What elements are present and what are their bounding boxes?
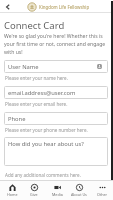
staticText: How did you hear about us?: [8, 140, 84, 148]
staticText: Phone: [8, 115, 26, 123]
staticText: We're so glad you're here! Whether this …: [4, 33, 107, 56]
button[interactable]: email.address@user.com: [4, 86, 108, 99]
button[interactable]: About Us: [68, 181, 90, 200]
staticText: Connect Card: [4, 19, 65, 32]
button[interactable]: How did you hear about us?: [4, 137, 108, 166]
staticText: User Name: [8, 63, 39, 71]
staticText: Please enter your name here.: [5, 75, 68, 81]
button[interactable]: User Name: [4, 60, 108, 73]
button[interactable]: Other: [91, 181, 113, 200]
staticText: Please enter your phone number here.: [5, 127, 88, 133]
staticText: Add any additional comments here.: [5, 172, 81, 178]
button[interactable]: Give: [23, 181, 45, 200]
staticText: Kingdom Life Fellowship: [39, 4, 90, 10]
staticText: About Us: [71, 192, 87, 197]
button[interactable]: Back: [0, 0, 16, 13]
button[interactable]: Pick contact: [97, 64, 102, 69]
staticText: Please enter your email here.: [5, 101, 68, 107]
staticText: email.address@user.com: [8, 89, 76, 97]
staticText: Media: [52, 192, 63, 197]
button[interactable]: Home: [1, 181, 23, 200]
button[interactable]: Phone: [4, 112, 108, 125]
staticText: Other: [97, 192, 108, 197]
button[interactable]: Media: [46, 181, 68, 200]
staticText: Give: [30, 192, 38, 197]
staticText: Home: [7, 192, 18, 197]
